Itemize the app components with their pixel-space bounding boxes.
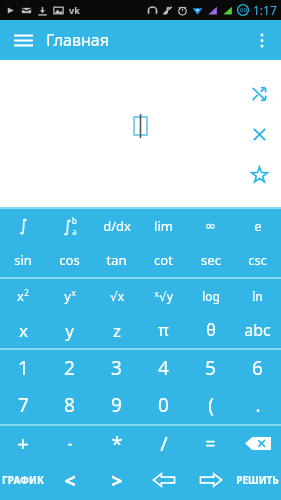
button[interactable]: e [234,209,281,242]
button[interactable]: РЕШИТЬ [234,460,281,500]
button[interactable]: 0 [140,386,187,424]
button[interactable]: cos [46,242,93,277]
button[interactable]: Move right [187,460,234,500]
staticText: tan [106,251,127,269]
button[interactable]: x [0,279,46,312]
button[interactable]: log [187,279,234,312]
staticText: Главная [46,29,109,51]
button[interactable]: x [0,312,46,348]
button[interactable]: Shuffle [245,80,273,108]
staticText: vk [69,4,80,16]
staticText: 8 [64,392,75,418]
button[interactable]: ∫ [0,209,46,242]
button[interactable]: ∞ [187,209,234,242]
staticText: РЕШИТЬ [236,473,279,487]
staticText: sec [201,251,221,269]
button[interactable]: 1 [0,350,46,386]
button[interactable]: 7 [0,386,46,424]
staticText: 4 [158,355,169,381]
button[interactable]: y [46,279,93,312]
staticText: a [72,226,77,237]
staticText: θ [206,319,216,341]
staticText: y [64,287,71,305]
staticText: 7 [18,392,29,418]
button[interactable]: 6 [234,350,281,386]
button[interactable]: . [234,386,281,424]
staticText: 9 [111,392,122,418]
button[interactable]: y [46,312,93,348]
staticText: 2 [64,355,75,381]
button[interactable]: Backspace [234,426,281,460]
staticText: x [154,288,159,299]
button[interactable]: ГРАФИК [0,460,46,500]
button[interactable]: x [140,279,187,312]
staticText: 5 [205,355,216,381]
button[interactable]: tan [93,242,140,277]
button[interactable]: abc [234,312,281,348]
button[interactable]: Clear [245,120,273,148]
button[interactable]: ∫ [46,209,93,242]
staticText: x [19,319,28,342]
staticText: . [255,392,261,418]
staticText: < [64,467,76,494]
button[interactable]: ( [187,386,234,424]
button[interactable]: More options [247,25,277,55]
staticText: 6 [252,355,263,381]
staticText: x [17,287,24,305]
staticText: ∞ [205,218,216,233]
staticText: e [254,217,262,235]
button[interactable]: * [93,426,140,460]
button[interactable]: > [93,460,140,500]
button[interactable]: θ [187,312,234,348]
staticText: abc [244,319,271,341]
button[interactable]: 3 [93,350,140,386]
button[interactable]: - [46,426,93,460]
staticText: y [65,319,74,342]
staticText: sin [14,251,32,269]
button[interactable]: Favorite [245,160,273,188]
staticText: cot [154,251,173,269]
button[interactable]: 8 [46,386,93,424]
staticText: cos [59,251,80,269]
staticText: x [71,287,76,298]
button[interactable]: sin [0,242,46,277]
staticText: = [205,431,216,456]
button[interactable]: π [140,312,187,348]
button[interactable]: Move left [140,460,187,500]
staticText: ln [252,288,263,304]
button[interactable]: + [0,426,46,460]
button[interactable]: / [140,426,187,460]
staticText: √y [159,288,173,304]
staticText: * [111,430,123,457]
button[interactable]: cot [140,242,187,277]
staticText: - [67,432,73,454]
button[interactable]: ln [234,279,281,312]
staticText: ∫ [19,216,28,235]
button[interactable]: Menu [8,25,38,55]
staticText: csc [248,251,267,269]
button[interactable]: 2 [46,350,93,386]
button[interactable]: = [187,426,234,460]
staticText: √x [110,288,124,304]
button[interactable]: z [93,312,140,348]
button[interactable]: lim [140,209,187,242]
staticText: 0 [158,392,169,418]
button[interactable]: d/dx [93,209,140,242]
button[interactable]: < [46,460,93,500]
staticText: d/dx [103,217,131,235]
button[interactable]: csc [234,242,281,277]
button[interactable]: 9 [93,386,140,424]
staticText: 3 [111,355,122,381]
staticText: lim [154,217,173,235]
staticText: b [72,215,77,226]
staticText: 1 [18,355,29,381]
staticText: z [113,319,121,342]
staticText: > [111,467,123,494]
staticText: ГРАФИК [2,473,44,487]
staticText: ( [208,392,214,418]
staticText: ∫ [63,217,72,236]
button[interactable]: 5 [187,350,234,386]
button[interactable]: √x [93,279,140,312]
button[interactable]: 4 [140,350,187,386]
button[interactable]: sec [187,242,234,277]
